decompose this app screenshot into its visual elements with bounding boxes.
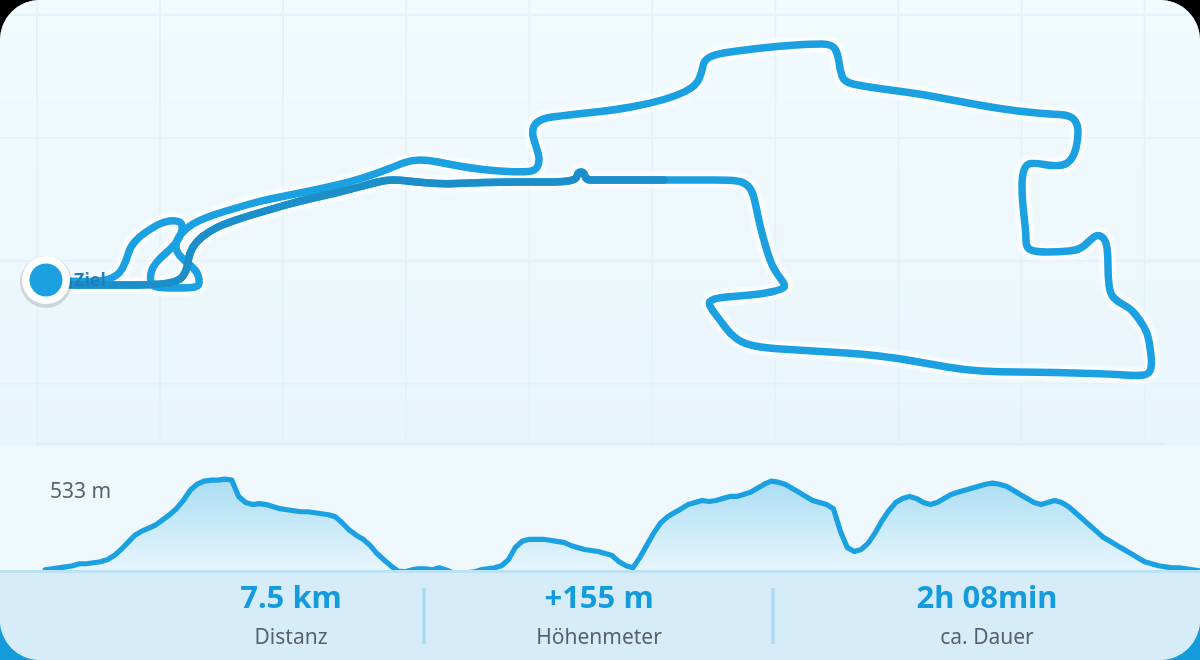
staticText: Distanz (254, 622, 328, 651)
button[interactable]: 7.5 km (232, 573, 350, 653)
button[interactable]: Route map (0, 0, 1200, 446)
staticText: Ziel (74, 267, 106, 292)
staticText: +155 m (544, 575, 654, 617)
staticText: Höhenmeter (536, 622, 662, 651)
button[interactable]: 2h 08min (908, 573, 1066, 653)
button[interactable]: +155 m (528, 573, 670, 653)
staticText: 533 m (50, 476, 112, 505)
staticText: ca. Dauer (940, 622, 1034, 651)
staticText: 7.5 km (240, 575, 342, 617)
staticText: 2h 08min (916, 575, 1058, 617)
